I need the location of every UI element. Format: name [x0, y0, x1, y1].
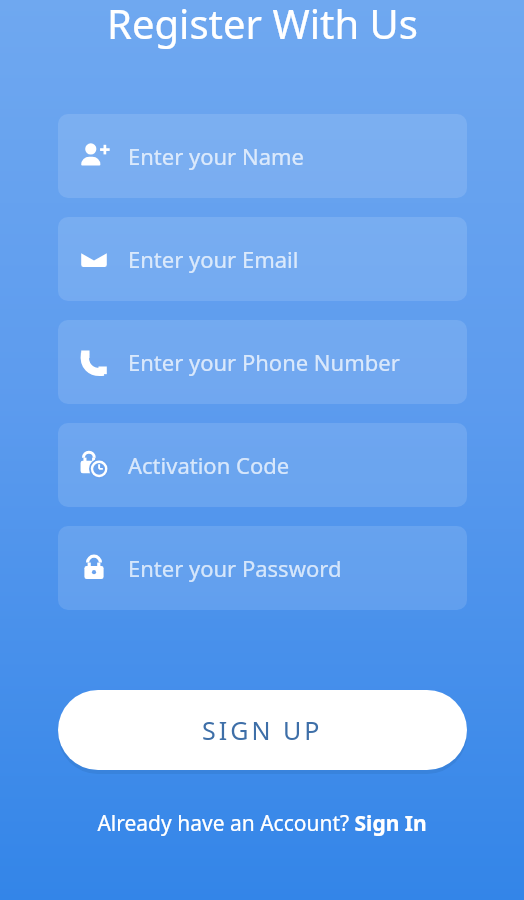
button[interactable]: SIGN UP [58, 690, 467, 770]
staticText: Enter your Password [128, 553, 342, 583]
staticText: Register With Us [107, 0, 418, 50]
staticText: SIGN UP [202, 713, 323, 747]
button[interactable]: Enter your Phone Number [58, 320, 467, 404]
staticText: Enter your Name [128, 141, 304, 171]
button[interactable]: Enter your Name [58, 114, 467, 198]
staticText: Already have an Account? Sign In [97, 809, 427, 838]
staticText: Enter your Email [128, 244, 299, 274]
staticText: Enter your Phone Number [128, 347, 400, 377]
button[interactable]: Already have an Account? Sign In [85, 803, 439, 844]
button[interactable]: Activation Code [58, 423, 467, 507]
button[interactable]: Enter your Email [58, 217, 467, 301]
staticText: Activation Code [128, 450, 290, 480]
button[interactable]: Enter your Password [58, 526, 467, 610]
